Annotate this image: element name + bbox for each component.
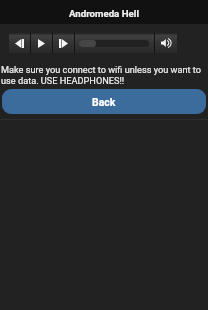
button[interactable]: Seek xyxy=(75,33,154,53)
button[interactable]: Volume xyxy=(155,33,177,53)
staticText: Andromeda Hell xyxy=(69,8,139,19)
button[interactable]: Play xyxy=(31,33,52,53)
staticText: Make sure you connect to wifi unless you… xyxy=(1,64,207,86)
button[interactable]: Next xyxy=(53,33,74,53)
button[interactable]: Back xyxy=(2,89,206,114)
staticText: Back xyxy=(92,96,116,108)
button[interactable]: Previous xyxy=(9,33,30,53)
